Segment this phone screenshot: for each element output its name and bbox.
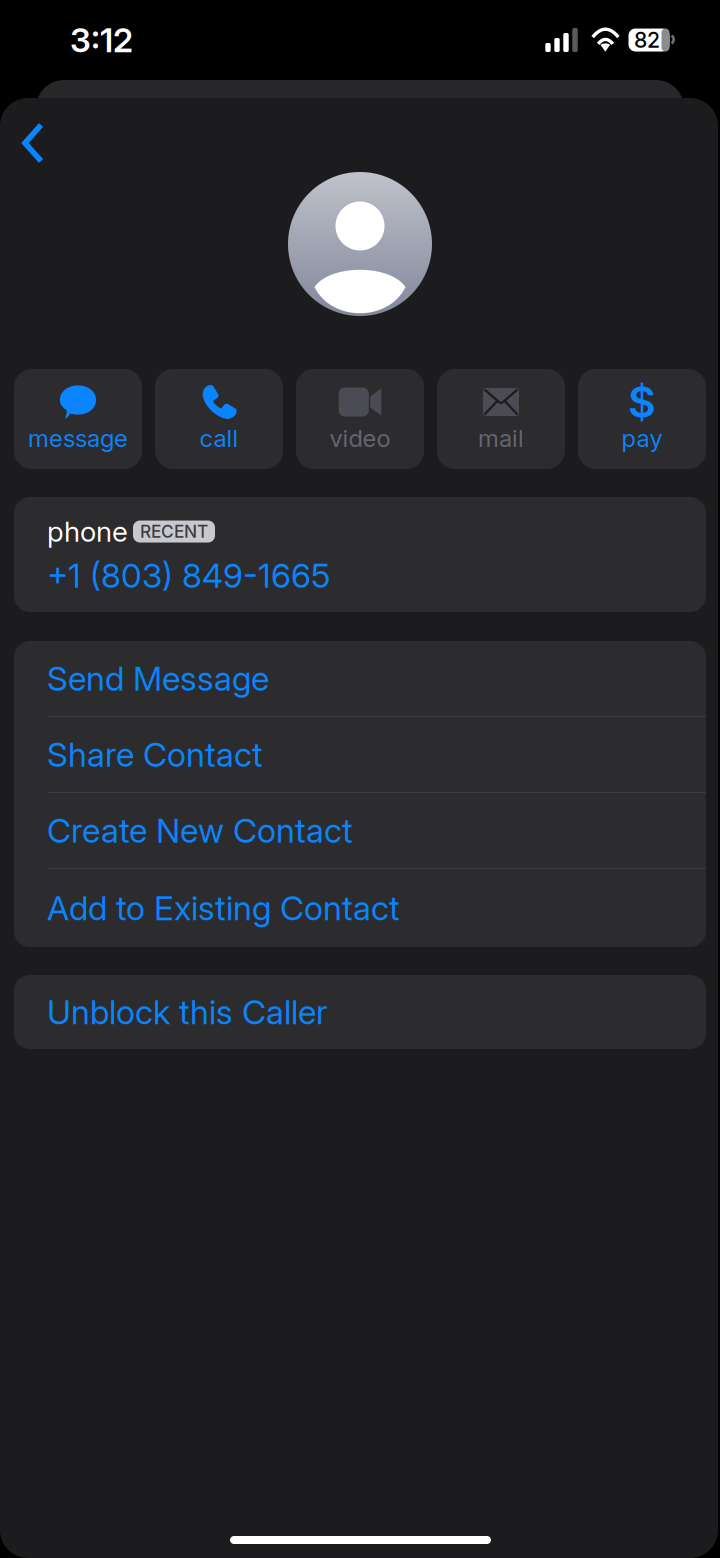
button[interactable]: Share Contact: [14, 717, 706, 793]
staticText: Create New Contact: [47, 811, 353, 850]
staticText: 82: [634, 27, 660, 53]
button[interactable]: Add to Existing Contact: [14, 869, 706, 947]
staticText: message: [28, 424, 128, 452]
button[interactable]: Send Message: [14, 641, 706, 717]
staticText: mail: [478, 424, 524, 452]
button[interactable]: Unblock this Caller: [14, 975, 706, 1049]
button[interactable]: $: [578, 369, 706, 469]
button[interactable]: phone: [14, 497, 706, 612]
button[interactable]: Create New Contact: [14, 793, 706, 869]
staticText: RECENT: [140, 521, 208, 542]
staticText: Add to Existing Contact: [47, 888, 400, 928]
button[interactable]: call: [155, 369, 283, 469]
button[interactable]: message: [14, 369, 142, 469]
staticText: Unblock this Caller: [47, 992, 327, 1032]
staticText: Send Message: [47, 659, 269, 698]
staticText: phone: [47, 515, 128, 548]
staticText: $: [628, 377, 656, 427]
button[interactable]: video: [296, 369, 424, 469]
staticText: +1 (803) 849-1665: [47, 556, 330, 595]
staticText: call: [199, 424, 238, 452]
staticText: pay: [621, 424, 662, 452]
staticText: Share Contact: [47, 735, 263, 774]
staticText: video: [329, 424, 390, 452]
staticText: 3:12: [70, 20, 133, 60]
button[interactable]: Back: [0, 108, 68, 178]
button[interactable]: mail: [437, 369, 565, 469]
